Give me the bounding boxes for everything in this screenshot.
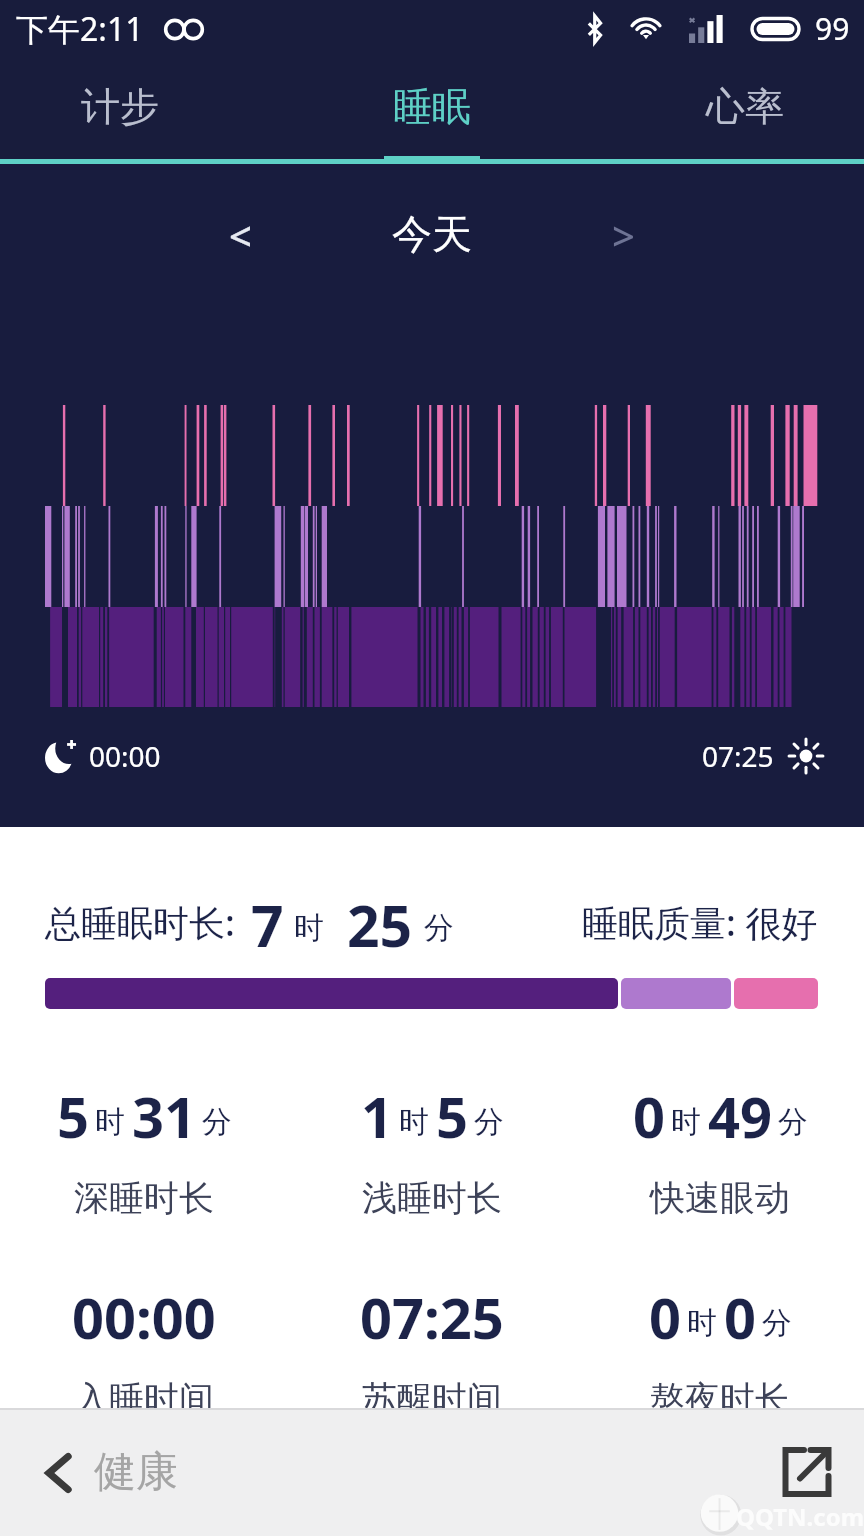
staticText: 5: [57, 1078, 90, 1154]
staticText: 快速眼动: [650, 1176, 790, 1220]
button[interactable]: 0: [576, 1078, 864, 1220]
staticText: 1: [361, 1078, 394, 1154]
staticText: 分: [424, 909, 454, 947]
staticText: 99: [815, 8, 850, 49]
staticText: 熬夜时长: [650, 1377, 790, 1421]
staticText: 分: [474, 1103, 504, 1141]
button[interactable]: 睡眠: [370, 57, 494, 156]
staticText: 25: [347, 886, 413, 958]
staticText: 时: [687, 1304, 717, 1342]
staticText: 0: [633, 1078, 666, 1154]
staticText: 49: [708, 1078, 773, 1154]
staticText: 5: [436, 1078, 469, 1154]
staticText: 睡眠质量: 很好: [582, 898, 818, 947]
staticText: 00:00: [89, 737, 161, 775]
staticText: 入睡时间: [74, 1377, 214, 1421]
button[interactable]: 计步: [58, 57, 182, 156]
staticText: <: [229, 208, 252, 262]
staticText: 分: [762, 1304, 792, 1342]
staticText: 健康: [94, 1446, 178, 1499]
staticText: 分: [778, 1103, 808, 1141]
staticText: 浅睡时长: [362, 1176, 502, 1220]
button[interactable]: 5: [0, 1078, 288, 1220]
staticText: 苏醒时间: [362, 1377, 502, 1421]
button[interactable]: 1: [288, 1078, 576, 1220]
staticText: 计步: [81, 82, 159, 131]
button[interactable]: 健康: [36, 1446, 178, 1499]
staticText: 时: [671, 1103, 701, 1141]
staticText: 下午2:11: [16, 7, 144, 51]
staticText: 0: [724, 1279, 757, 1355]
staticText: 时: [294, 909, 324, 947]
staticText: >: [612, 208, 635, 262]
staticText: 07:25: [360, 1279, 504, 1355]
button[interactable]: Previous day: [205, 200, 275, 270]
staticText: 深睡时长: [74, 1176, 214, 1220]
staticText: 00:00: [72, 1279, 216, 1355]
staticText: 07:25: [702, 737, 774, 775]
button[interactable]: 0: [576, 1279, 864, 1421]
button[interactable]: Next day: [588, 200, 658, 270]
staticText: 时: [399, 1103, 429, 1141]
button[interactable]: 心率: [683, 57, 807, 156]
staticText: 今天: [392, 209, 472, 259]
staticText: 睡眠: [393, 82, 471, 131]
button[interactable]: Open externally: [776, 1441, 838, 1503]
staticText: 31: [132, 1078, 197, 1154]
staticText: 时: [95, 1103, 125, 1141]
button[interactable]: 00:00: [0, 1279, 288, 1421]
staticText: 分: [202, 1103, 232, 1141]
staticText: 总睡眠时长:: [45, 898, 235, 947]
staticText: 7: [251, 886, 284, 958]
button[interactable]: 07:25: [288, 1279, 576, 1421]
staticText: 0: [649, 1279, 682, 1355]
staticText: 心率: [706, 82, 784, 131]
staticText: QQTN.com: [736, 1500, 864, 1533]
